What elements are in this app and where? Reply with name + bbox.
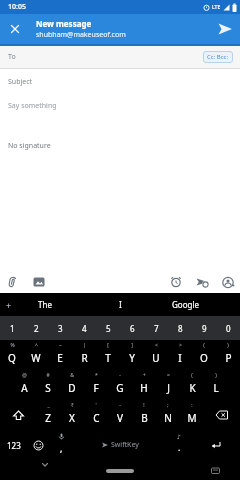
- staticText: C: [93, 411, 100, 425]
- button[interactable]: [204, 400, 240, 430]
- button[interactable]: 0: [216, 316, 240, 340]
- button[interactable]: Say something: [8, 101, 57, 111]
- staticText: X: [69, 411, 75, 425]
- staticText: B: [141, 411, 148, 425]
- staticText: J: [167, 381, 170, 395]
- button[interactable]: ]: [120, 340, 144, 370]
- staticText: ,: [60, 442, 63, 454]
- staticText: 123: [7, 440, 21, 451]
- button[interactable]: 4: [72, 316, 96, 340]
- staticText: 10:05: [8, 2, 26, 12]
- button[interactable]: 8: [168, 316, 192, 340]
- button[interactable]: ): [204, 370, 228, 400]
- button[interactable]: ^: [24, 340, 48, 370]
- staticText: U: [152, 351, 160, 365]
- staticText: Y: [129, 351, 135, 365]
- button[interactable]: ₹: [60, 400, 84, 430]
- button[interactable]: [0, 400, 36, 430]
- button[interactable]: ♪: [166, 430, 192, 460]
- button[interactable]: -: [108, 400, 132, 430]
- button[interactable]: %: [0, 340, 24, 370]
- button[interactable]: [27, 430, 49, 460]
- staticText: F: [93, 381, 99, 395]
- button[interactable]: #: [36, 370, 60, 400]
- button[interactable]: ,: [49, 430, 73, 460]
- staticText: ': [95, 402, 97, 409]
- staticText: @: [22, 372, 27, 379]
- staticText: 1: [10, 323, 15, 334]
- button[interactable]: ): [216, 340, 240, 370]
- staticText: [: [107, 342, 109, 349]
- button[interactable]: [106, 469, 134, 473]
- button[interactable]: Subject: [8, 77, 33, 87]
- button[interactable]: (: [180, 370, 204, 400]
- button[interactable]: |: [72, 340, 96, 370]
- button[interactable]: 2: [24, 316, 48, 340]
- button[interactable]: [33, 276, 45, 288]
- button[interactable]: [7, 276, 19, 288]
- button[interactable]: +: [132, 370, 156, 400]
- button[interactable]: [192, 430, 240, 460]
- button[interactable]: !: [132, 400, 156, 430]
- button[interactable]: ~: [48, 340, 72, 370]
- staticText: _: [47, 402, 50, 409]
- button[interactable]: ': [84, 400, 108, 430]
- staticText: ]: [131, 342, 133, 349]
- staticText: >: [179, 342, 182, 349]
- staticText: H: [140, 381, 148, 395]
- button[interactable]: *: [84, 370, 108, 400]
- staticText: LTE: [212, 4, 221, 11]
- button[interactable]: :: [180, 400, 204, 430]
- staticText: G: [116, 381, 124, 395]
- button[interactable]: Google: [172, 299, 199, 310]
- staticText: O: [200, 351, 208, 365]
- button[interactable]: 7: [144, 316, 168, 340]
- button[interactable]: The: [38, 299, 52, 310]
- staticText: ♪: [177, 433, 181, 440]
- button[interactable]: [: [96, 340, 120, 370]
- staticText: V: [117, 411, 123, 425]
- button[interactable]: 5: [96, 316, 120, 340]
- button[interactable]: 123: [0, 430, 27, 460]
- button[interactable]: To: [0, 46, 240, 68]
- staticText: ): [215, 372, 217, 379]
- staticText: Cc: Bcc:: [207, 53, 229, 61]
- button[interactable]: Cc: Bcc:: [203, 51, 233, 63]
- staticText: S: [45, 381, 51, 395]
- staticText: +: [143, 372, 146, 379]
- button[interactable]: 1: [0, 316, 24, 340]
- button[interactable]: [10, 24, 20, 34]
- button[interactable]: +: [6, 299, 12, 311]
- staticText: W: [31, 351, 41, 365]
- staticText: ;: [167, 402, 169, 409]
- staticText: -: [119, 372, 121, 379]
- button[interactable]: I: [119, 299, 122, 310]
- button[interactable]: &: [60, 370, 84, 400]
- button[interactable]: 6: [120, 316, 144, 340]
- staticText: %: [10, 342, 15, 349]
- button[interactable]: [217, 21, 233, 37]
- staticText: 8: [178, 323, 183, 334]
- button[interactable]: @: [12, 370, 36, 400]
- button[interactable]: (: [192, 340, 216, 370]
- button[interactable]: No signature: [8, 141, 51, 151]
- staticText: D: [68, 381, 76, 395]
- button[interactable]: SwiftKey: [73, 430, 166, 460]
- button[interactable]: ;: [156, 400, 180, 430]
- button[interactable]: [222, 276, 235, 289]
- staticText: :: [191, 402, 193, 409]
- staticText: N: [164, 411, 172, 425]
- staticText: ^: [35, 342, 38, 349]
- button[interactable]: [196, 275, 210, 289]
- button[interactable]: -: [108, 370, 132, 400]
- button[interactable]: <: [144, 340, 168, 370]
- staticText: (: [191, 372, 193, 379]
- button[interactable]: >: [168, 340, 192, 370]
- button[interactable]: _: [36, 400, 60, 430]
- staticText: (: [203, 342, 205, 349]
- button[interactable]: [170, 276, 182, 288]
- button[interactable]: 9: [192, 316, 216, 340]
- button[interactable]: 3: [48, 316, 72, 340]
- staticText: ): [227, 342, 229, 349]
- button[interactable]: =: [156, 370, 180, 400]
